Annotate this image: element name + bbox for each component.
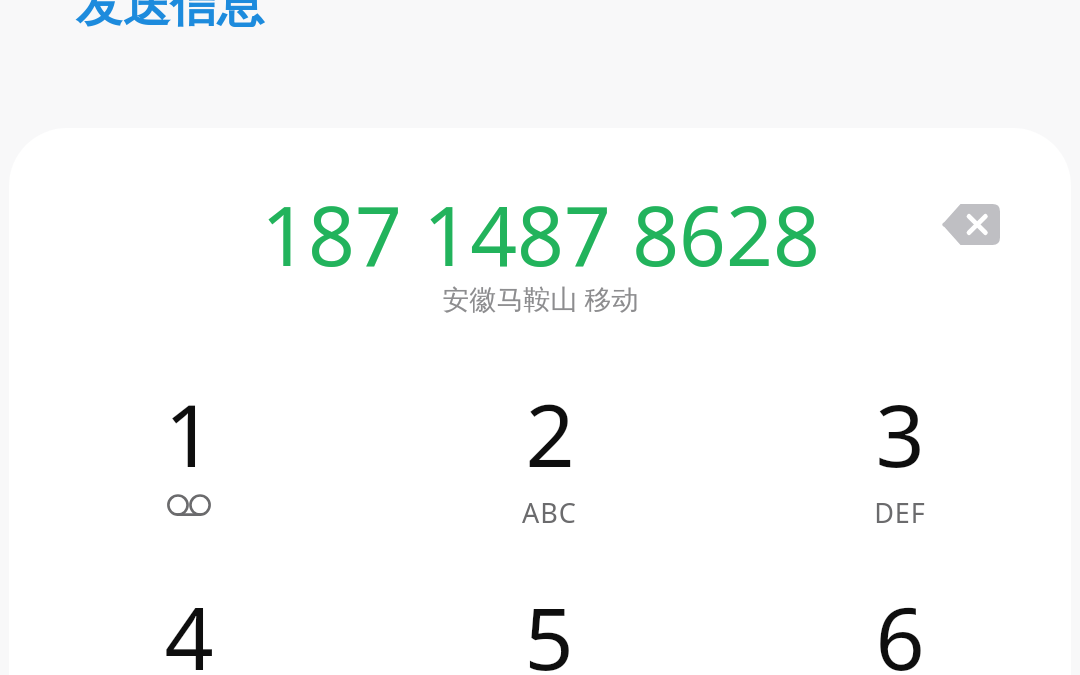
- staticText: 5: [524, 578, 574, 675]
- button[interactable]: 4: [9, 578, 369, 675]
- staticText: 安徽马鞍山 移动: [442, 280, 639, 317]
- staticText: 1: [164, 375, 214, 492]
- button[interactable]: Backspace: [915, 176, 1025, 272]
- button[interactable]: 3: [729, 375, 1071, 575]
- staticText: 发送信息: [76, 0, 264, 35]
- staticText: 4: [164, 578, 214, 675]
- button[interactable]: 5: [369, 578, 729, 675]
- button[interactable]: 6: [729, 578, 1071, 675]
- staticText: ABC: [522, 494, 577, 531]
- staticText: DEF: [874, 494, 926, 531]
- button[interactable]: 1: [9, 375, 369, 575]
- button[interactable]: 发送信息: [76, 0, 264, 35]
- staticText: 187 1487 8628: [261, 178, 820, 290]
- button[interactable]: 2: [369, 375, 729, 575]
- staticText: 3: [875, 375, 925, 492]
- staticText: 2: [525, 375, 575, 492]
- staticText: 6: [875, 578, 925, 675]
